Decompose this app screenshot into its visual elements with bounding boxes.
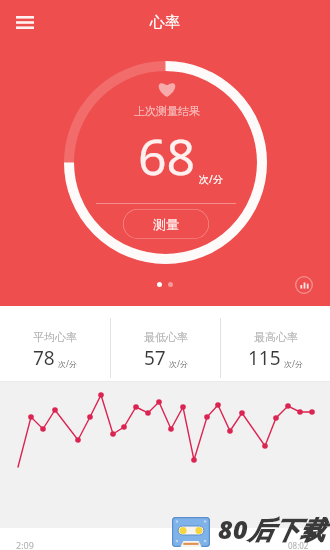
- button[interactable]: 最高心率: [221, 306, 330, 371]
- button[interactable]: 平均心率: [0, 306, 110, 371]
- staticText: 测量: [153, 216, 179, 232]
- staticText: 次/分: [199, 172, 223, 186]
- staticText: 最低心率: [144, 330, 188, 344]
- staticText: 平均心率: [33, 330, 77, 344]
- staticText: 心率: [0, 13, 330, 32]
- staticText: 次/分: [169, 358, 188, 369]
- button[interactable]: Menu: [9, 8, 41, 36]
- staticText: 57: [144, 345, 166, 371]
- staticText: 最高心率: [254, 330, 298, 344]
- staticText: 2:09: [16, 539, 34, 550]
- button[interactable]: Statistics: [293, 274, 315, 296]
- button[interactable]: 最低心率: [111, 306, 220, 371]
- staticText: 80后下载: [218, 512, 326, 546]
- staticText: 上次测量结果: [2, 104, 330, 118]
- staticText: 08:02: [288, 540, 309, 550]
- staticText: 115: [248, 345, 281, 371]
- staticText: 次/分: [58, 358, 77, 369]
- staticText: 68: [138, 122, 196, 190]
- staticText: 78: [33, 345, 55, 371]
- staticText: 次/分: [284, 358, 303, 369]
- button[interactable]: 测量: [123, 209, 209, 239]
